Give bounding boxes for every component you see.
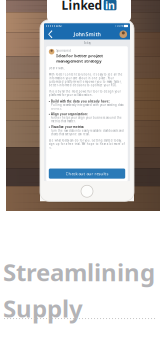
staticText: Supply: [3, 292, 83, 324]
staticText: John Smith: [73, 31, 100, 38]
staticText: Further helps your align your business a…: [51, 116, 122, 123]
staticText: Visualize your metrics:: [51, 125, 84, 129]
staticText: Linked: [61, 0, 102, 13]
staticText: Idea for better project management strat…: [56, 53, 103, 64]
button[interactable]: Check out our results: [49, 168, 125, 179]
staticText: Pulling seamlessly integrated with your …: [51, 103, 123, 110]
staticText: With Foster Content Solutions, it's easy…: [49, 73, 123, 87]
staticText: Sponsored: [56, 49, 71, 52]
staticText: Turn the raw data into easily readable d…: [51, 129, 124, 136]
staticText: See what Fostex can do for you. Getting …: [49, 139, 125, 149]
staticText: This is by far the most powerful tool to…: [49, 90, 121, 97]
staticText: in: [105, 0, 115, 12]
staticText: Today: [83, 41, 90, 45]
staticText: Streamlining: [3, 256, 155, 288]
staticText: 100%: [115, 24, 123, 28]
staticText: AT&T: [56, 24, 62, 28]
staticText: Dear Vivian,: [49, 66, 65, 70]
button[interactable]: Back: [46, 29, 55, 40]
staticText: Build with the data you already have:: [51, 100, 110, 103]
staticText: Align your organization:: [51, 112, 88, 116]
button[interactable]: Profile: [119, 29, 128, 40]
staticText: Check out our results: [65, 171, 108, 176]
